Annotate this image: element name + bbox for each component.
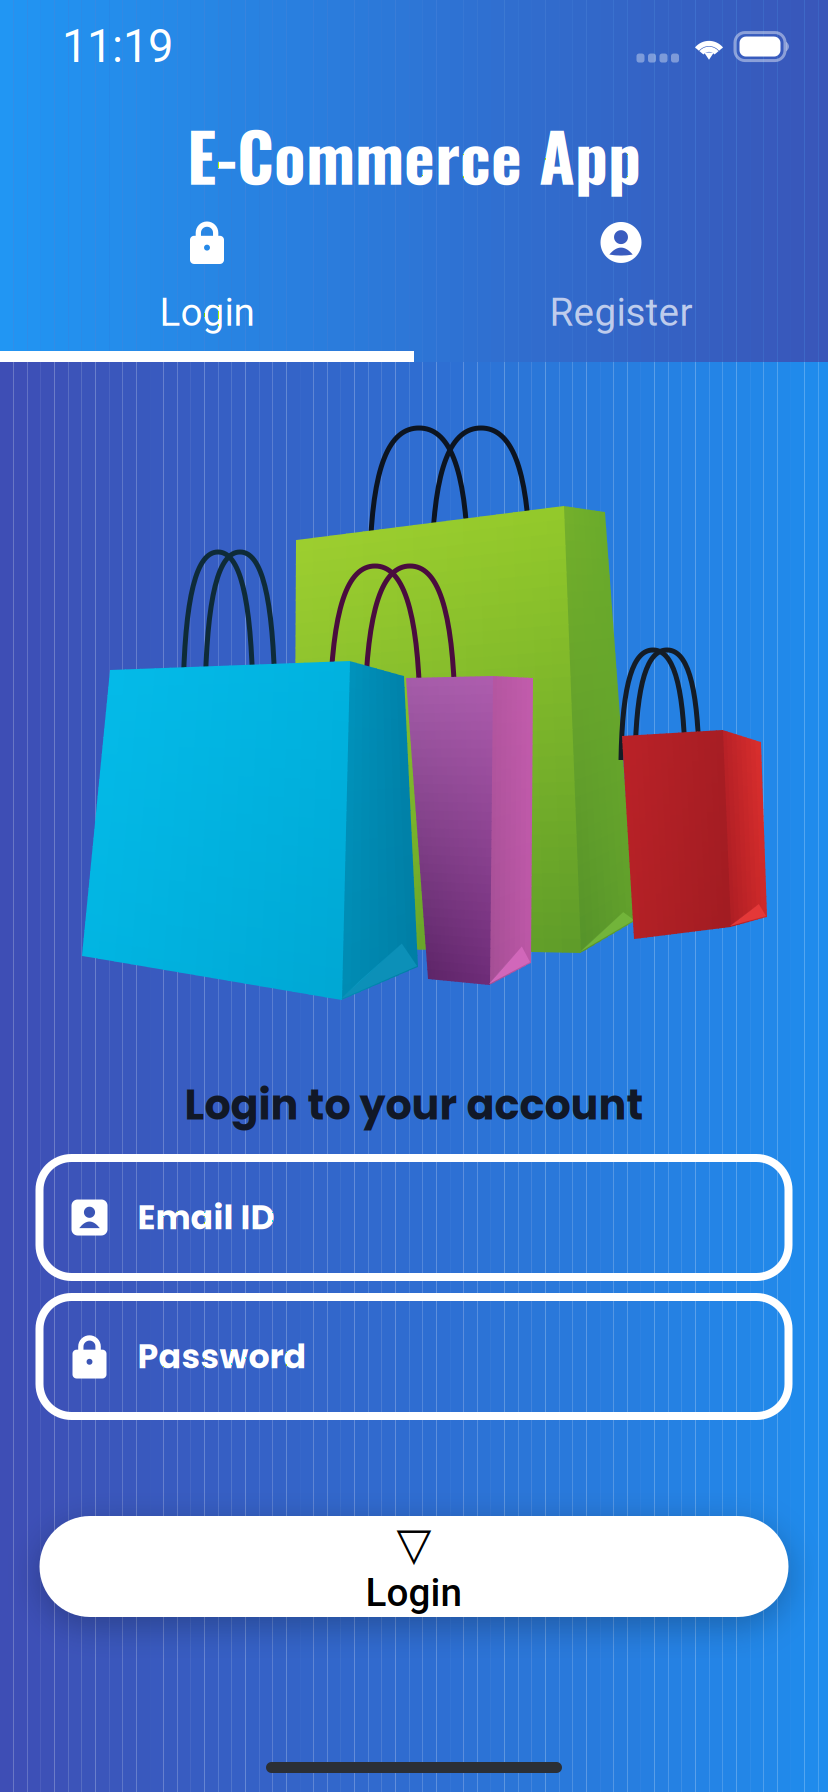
staticText: Login (365, 1570, 462, 1615)
button[interactable]: Email ID (39, 1158, 788, 1277)
staticText: Email ID (137, 1194, 274, 1241)
button[interactable]: ▽ (39, 1516, 788, 1617)
staticText: Login (159, 290, 254, 335)
staticText: 11:19 (62, 20, 173, 73)
staticText: Register (549, 290, 692, 335)
staticText: ▽ (396, 1517, 431, 1570)
staticText: Login to your account (184, 1076, 643, 1134)
button[interactable]: Register (414, 214, 828, 334)
button[interactable]: Password (39, 1297, 788, 1416)
button[interactable]: Login (0, 214, 414, 334)
staticText: E-Commerce App (187, 107, 641, 203)
staticText: Password (137, 1333, 306, 1380)
